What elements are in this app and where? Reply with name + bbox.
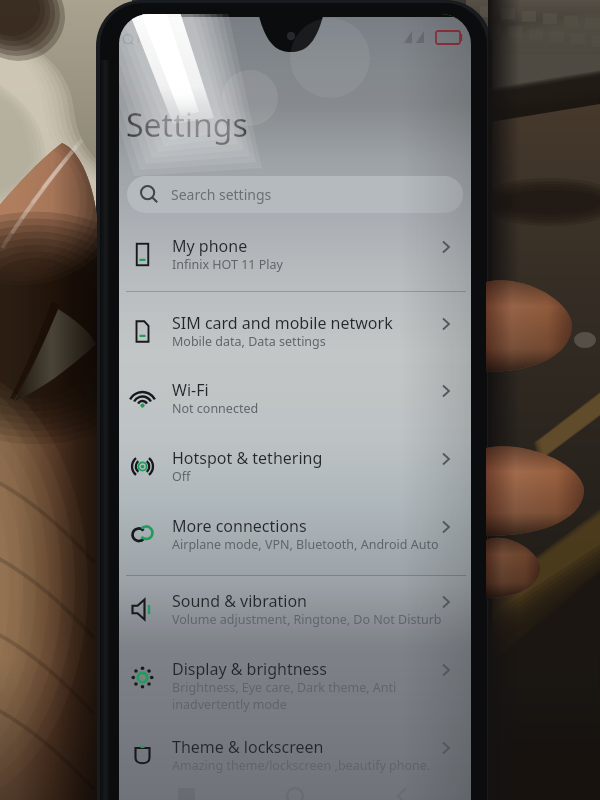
- button[interactable]: Search settings: [127, 176, 463, 213]
- button[interactable]: Hotspot & tethering: [119, 438, 471, 500]
- staticText: Brightness, Eye care, Dark theme, Anti i…: [172, 679, 397, 712]
- staticText: Hotspot & tethering: [172, 447, 323, 469]
- button[interactable]: Theme & lockscreen: [119, 727, 471, 789]
- button[interactable]: Sound & vibration: [119, 581, 471, 643]
- staticText: Wi-Fi: [172, 379, 209, 401]
- staticText: Search settings: [171, 185, 272, 204]
- staticText: Off: [172, 468, 191, 485]
- staticText: Sound & vibration: [172, 590, 307, 612]
- staticText: My phone: [172, 235, 248, 257]
- button[interactable]: My phone: [119, 226, 471, 288]
- staticText: SIM card and mobile network: [172, 312, 393, 334]
- staticText: Display & brightness: [172, 658, 327, 680]
- staticText: Settings: [126, 103, 248, 147]
- staticText: More connections: [172, 515, 307, 537]
- button[interactable]: More connections: [119, 506, 471, 568]
- staticText: Volume adjustment, Ringtone, Do Not Dist…: [172, 611, 442, 628]
- button[interactable]: SIM card and mobile network: [119, 303, 471, 365]
- staticText: Mobile data, Data settings: [172, 333, 326, 350]
- staticText: Infinix HOT 11 Play: [172, 256, 283, 273]
- staticText: Theme & lockscreen: [172, 736, 324, 758]
- button[interactable]: Display & brightness: [119, 649, 471, 711]
- staticText: Not connected: [172, 400, 259, 417]
- staticText: Airplane mode, VPN, Bluetooth, Android A…: [172, 536, 439, 553]
- button[interactable]: Wi-Fi: [119, 370, 471, 432]
- staticText: Amazing theme/lockscreen ,beautify phone…: [172, 757, 431, 774]
